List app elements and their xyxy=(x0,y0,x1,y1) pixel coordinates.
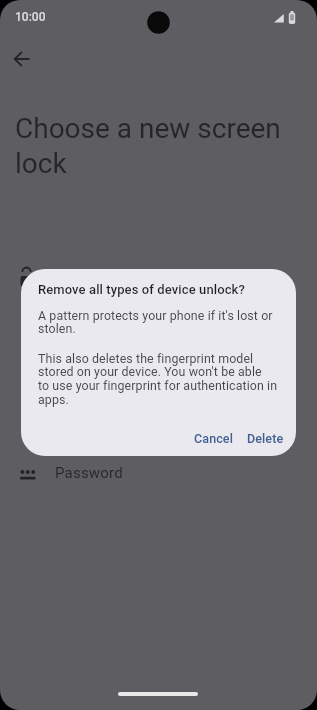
button[interactable]: Delete xyxy=(240,425,291,452)
button[interactable]: Password xyxy=(0,457,317,489)
staticText: Choose a new screen lock xyxy=(15,112,281,180)
staticText: Remove all types of device unlock? xyxy=(38,282,245,297)
staticText: Delete xyxy=(247,431,284,446)
staticText: Cancel xyxy=(194,431,233,446)
button[interactable] xyxy=(6,44,37,75)
staticText: This also deletes the fingerprint model … xyxy=(38,351,278,407)
button[interactable]: Cancel xyxy=(187,425,240,452)
staticText: Password xyxy=(55,464,123,482)
staticText: A pattern protects your phone if it's lo… xyxy=(38,308,273,336)
staticText: 10:00 xyxy=(15,10,46,24)
